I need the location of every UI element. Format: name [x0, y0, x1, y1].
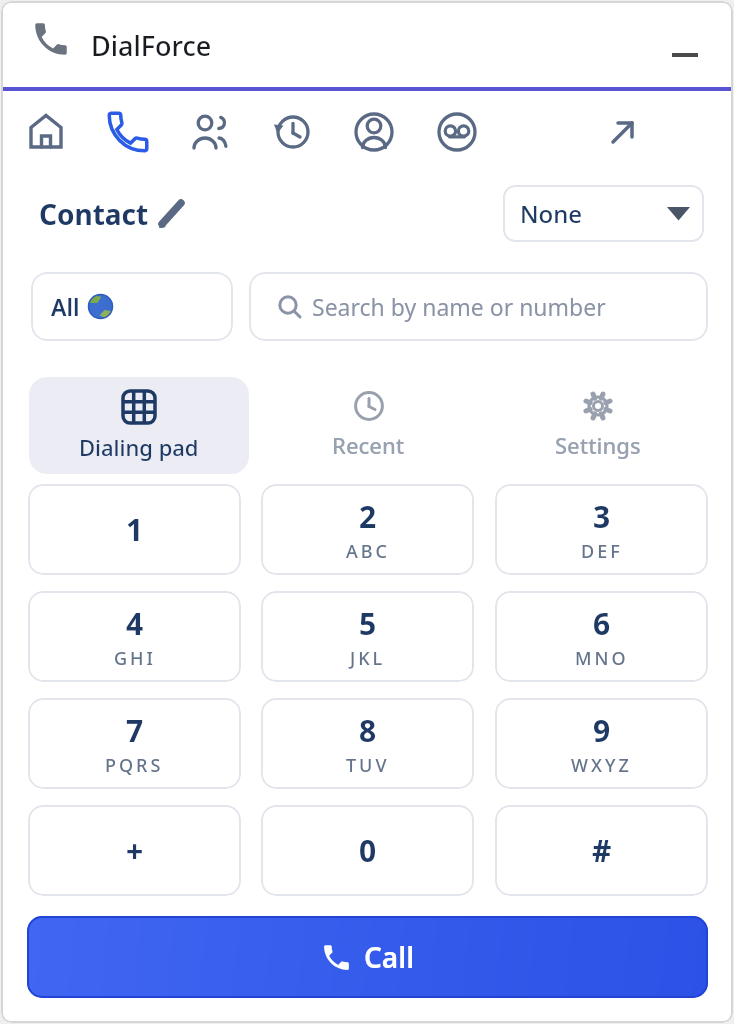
- button[interactable]: [103, 107, 153, 157]
- button[interactable]: 4: [28, 591, 241, 682]
- staticText: 3: [593, 496, 611, 537]
- staticText: TUV: [346, 753, 390, 778]
- button[interactable]: [24, 110, 68, 154]
- button[interactable]: 9: [495, 698, 708, 789]
- staticText: DialForce: [91, 27, 212, 64]
- staticText: +: [126, 830, 144, 871]
- button[interactable]: #: [495, 805, 708, 896]
- button[interactable]: Call: [27, 916, 708, 998]
- staticText: 7: [126, 710, 144, 751]
- button[interactable]: 2: [261, 484, 474, 575]
- staticText: 9: [593, 710, 611, 751]
- staticText: WXYZ: [571, 753, 632, 778]
- staticText: 1: [126, 509, 144, 550]
- staticText: 5: [359, 603, 377, 644]
- button[interactable]: None: [503, 185, 704, 242]
- staticText: GHI: [114, 646, 156, 671]
- button[interactable]: [270, 110, 314, 154]
- button[interactable]: 7: [28, 698, 241, 789]
- staticText: PQRS: [105, 753, 164, 778]
- button[interactable]: All: [31, 272, 233, 341]
- staticText: Call: [364, 938, 415, 976]
- staticText: JKL: [350, 646, 386, 671]
- staticText: 6: [593, 603, 611, 644]
- staticText: Dialing pad: [79, 432, 199, 462]
- staticText: ABC: [346, 539, 390, 564]
- staticText: 0: [359, 830, 377, 871]
- staticText: MNO: [575, 646, 629, 671]
- button[interactable]: 3: [495, 484, 708, 575]
- staticText: DEF: [581, 539, 623, 564]
- staticText: 4: [126, 603, 144, 644]
- button[interactable]: [435, 110, 479, 154]
- staticText: Settings: [555, 430, 641, 460]
- staticText: Search by name or number: [312, 291, 606, 322]
- staticText: 8: [359, 710, 377, 751]
- button[interactable]: 1: [28, 484, 241, 575]
- staticText: All: [51, 291, 80, 322]
- button[interactable]: 0: [261, 805, 474, 896]
- staticText: None: [520, 197, 583, 230]
- staticText: 2: [359, 496, 377, 537]
- button[interactable]: Settings: [489, 377, 707, 474]
- staticText: Contact: [39, 195, 149, 233]
- staticText: Recent: [332, 430, 405, 460]
- button[interactable]: +: [28, 805, 241, 896]
- button[interactable]: [188, 110, 232, 154]
- button[interactable]: 6: [495, 591, 708, 682]
- staticText: #: [592, 830, 612, 871]
- button[interactable]: [352, 110, 396, 154]
- button[interactable]: Recent: [259, 377, 477, 474]
- button[interactable]: [601, 110, 645, 154]
- button[interactable]: Search by name or number: [249, 272, 708, 341]
- button[interactable]: 8: [261, 698, 474, 789]
- button[interactable]: Dialing pad: [29, 377, 249, 474]
- button[interactable]: 5: [261, 591, 474, 682]
